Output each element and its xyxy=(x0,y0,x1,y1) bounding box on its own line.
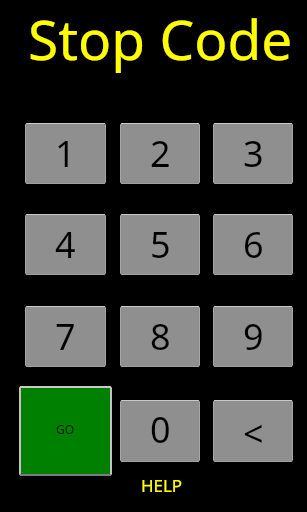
staticText: 5 xyxy=(150,220,171,269)
button[interactable]: 1 xyxy=(25,123,106,184)
button[interactable]: 5 xyxy=(120,214,200,275)
staticText: 9 xyxy=(243,312,264,361)
staticText: 1 xyxy=(55,129,76,178)
button[interactable]: 0 xyxy=(120,400,200,462)
button[interactable]: HELP xyxy=(122,474,201,497)
button[interactable]: < xyxy=(213,400,293,462)
button[interactable]: 4 xyxy=(25,214,106,275)
button[interactable]: 6 xyxy=(213,214,293,275)
button[interactable]: 7 xyxy=(25,306,106,367)
staticText: 7 xyxy=(55,312,76,361)
button[interactable]: 9 xyxy=(213,306,293,367)
button[interactable]: GO xyxy=(19,386,112,476)
staticText: 8 xyxy=(150,312,171,361)
button[interactable]: 2 xyxy=(120,123,200,184)
staticText: 6 xyxy=(243,220,264,269)
button[interactable]: 8 xyxy=(120,306,200,367)
staticText: Stop Code xyxy=(28,1,293,76)
staticText: 2 xyxy=(150,129,171,178)
button[interactable]: 3 xyxy=(213,123,293,184)
staticText: 4 xyxy=(55,220,76,269)
staticText: 3 xyxy=(243,129,264,178)
staticText: 0 xyxy=(150,405,171,454)
staticText: GO xyxy=(56,421,75,437)
staticText: < xyxy=(243,409,264,458)
